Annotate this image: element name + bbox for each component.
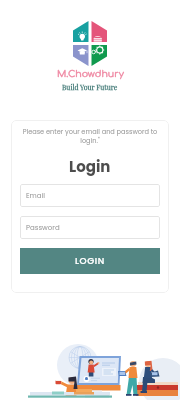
staticText: Build Your Future [62, 82, 118, 91]
staticText: Password [26, 223, 60, 233]
button[interactable]: Password [20, 216, 160, 239]
staticText: Please enter your email and password to … [22, 127, 158, 145]
staticText: Login [69, 156, 111, 177]
staticText: LOGIN [75, 255, 105, 268]
staticText: Email [26, 191, 45, 201]
button[interactable]: Email [20, 184, 160, 207]
staticText: M.Chowdhury [57, 69, 124, 80]
button[interactable]: LOGIN [20, 248, 160, 274]
